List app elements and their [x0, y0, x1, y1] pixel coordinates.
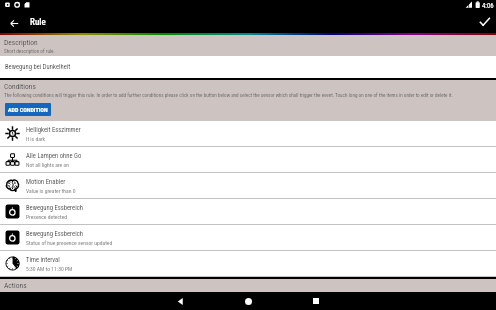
staticText: The following conditions will trigger th… [4, 92, 453, 98]
button[interactable]: Home [235, 292, 261, 310]
staticText: It is dark [26, 136, 46, 143]
staticText: Bewegung Essbereich [26, 204, 83, 212]
staticText: Not all lights are on [26, 162, 70, 169]
staticText: Helligkeit Esszimmer [26, 126, 81, 134]
staticText: Value is greater than 0 [26, 188, 76, 195]
staticText: Status of hue presence sensor updated [26, 240, 113, 247]
button[interactable]: Alle Lampen ohne Go [0, 147, 496, 173]
staticText: Actions [4, 281, 27, 290]
staticText: 4:06 [482, 2, 494, 10]
staticText: Motion Enabler [26, 178, 66, 186]
staticText: 5:30 AM to 11:30 PM [26, 266, 73, 273]
staticText: Time interval [26, 256, 60, 264]
button[interactable]: Navigate up [6, 15, 22, 31]
button[interactable]: Helligkeit Esszimmer [0, 121, 496, 147]
staticText: Bewegung Essbereich [26, 230, 83, 238]
button[interactable]: Bewegung Essbereich [0, 225, 496, 251]
staticText: Rule [30, 17, 46, 28]
button[interactable]: Recent apps [303, 292, 329, 310]
button[interactable]: Motion Enabler [0, 173, 496, 199]
staticText: Short description of rule. [4, 48, 55, 54]
staticText: Conditions [4, 82, 36, 91]
button[interactable]: Time interval [0, 251, 496, 277]
staticText: ADD CONDITION [8, 106, 48, 113]
staticText: Description [4, 38, 38, 47]
staticText: Bewegung bei Dunkelheit [5, 63, 71, 71]
button[interactable]: Back [167, 292, 193, 310]
staticText: Presence detected [26, 214, 68, 221]
button[interactable]: Bewegung Essbereich [0, 199, 496, 225]
button[interactable]: ADD CONDITION [5, 103, 51, 116]
button[interactable]: Save rule [477, 15, 493, 31]
staticText: Alle Lampen ohne Go [26, 152, 82, 160]
